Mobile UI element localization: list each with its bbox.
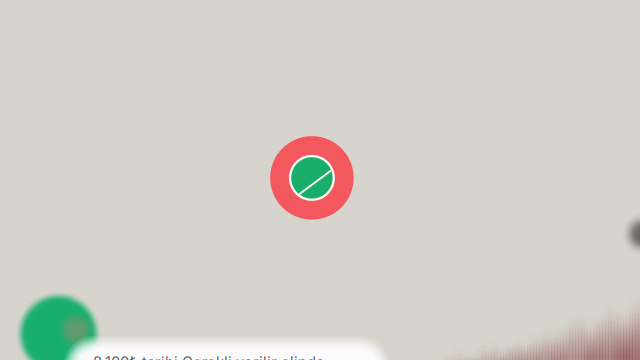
- staticText: 8.100₺ tarihi Gerekli verilir elinde: [93, 353, 325, 360]
